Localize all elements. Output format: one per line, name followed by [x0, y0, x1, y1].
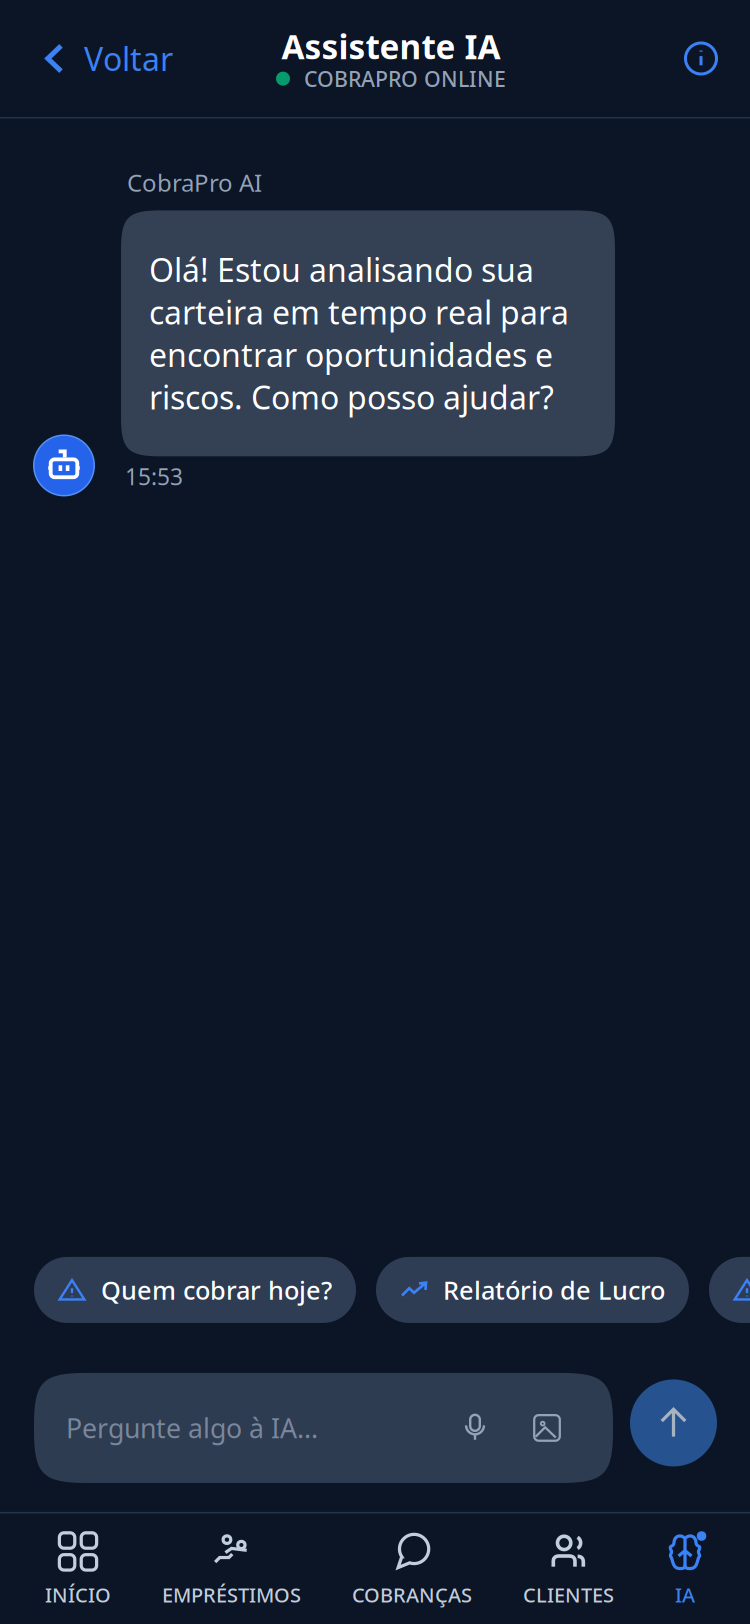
- button[interactable]: Enviar mensagem: [630, 1384, 717, 1471]
- button[interactable]: Quem cobrar hoje?: [34, 1257, 356, 1323]
- staticText: EMPRÉSTIMOS: [162, 1581, 301, 1608]
- button[interactable]: Anexar imagem: [491, 1412, 563, 1444]
- staticText: COBRAPRO ONLINE: [304, 64, 506, 93]
- staticText: CobraPro AI: [127, 166, 262, 198]
- staticText: Pergunte algo à IA...: [66, 1410, 318, 1446]
- staticText: COBRANÇAS: [352, 1581, 472, 1608]
- button[interactable]: Relatório de Lucro: [376, 1257, 689, 1323]
- button[interactable]: Risco de Inadimplência: [709, 1257, 750, 1323]
- staticText: Assistente IA: [281, 24, 500, 68]
- button[interactable]: COBRANÇAS: [346, 1513, 478, 1624]
- staticText: Relatório de Lucro: [443, 1273, 665, 1307]
- button[interactable]: CLIENTES: [517, 1513, 620, 1624]
- button[interactable]: IA: [659, 1513, 711, 1624]
- button[interactable]: EMPRÉSTIMOS: [156, 1513, 307, 1624]
- button[interactable]: Voltar: [0, 0, 195, 116]
- staticText: CLIENTES: [523, 1581, 614, 1608]
- staticText: Quem cobrar hoje?: [101, 1273, 332, 1307]
- button[interactable]: INÍCIO: [39, 1513, 117, 1624]
- staticText: IA: [675, 1581, 695, 1608]
- staticText: Voltar: [84, 37, 173, 80]
- staticText: INÍCIO: [45, 1581, 111, 1608]
- staticText: 15:53: [125, 461, 183, 491]
- button[interactable]: Informações: [662, 0, 750, 116]
- button[interactable]: Gravar áudio: [459, 1412, 491, 1444]
- staticText: Olá! Estou analisando sua carteira em te…: [149, 248, 569, 418]
